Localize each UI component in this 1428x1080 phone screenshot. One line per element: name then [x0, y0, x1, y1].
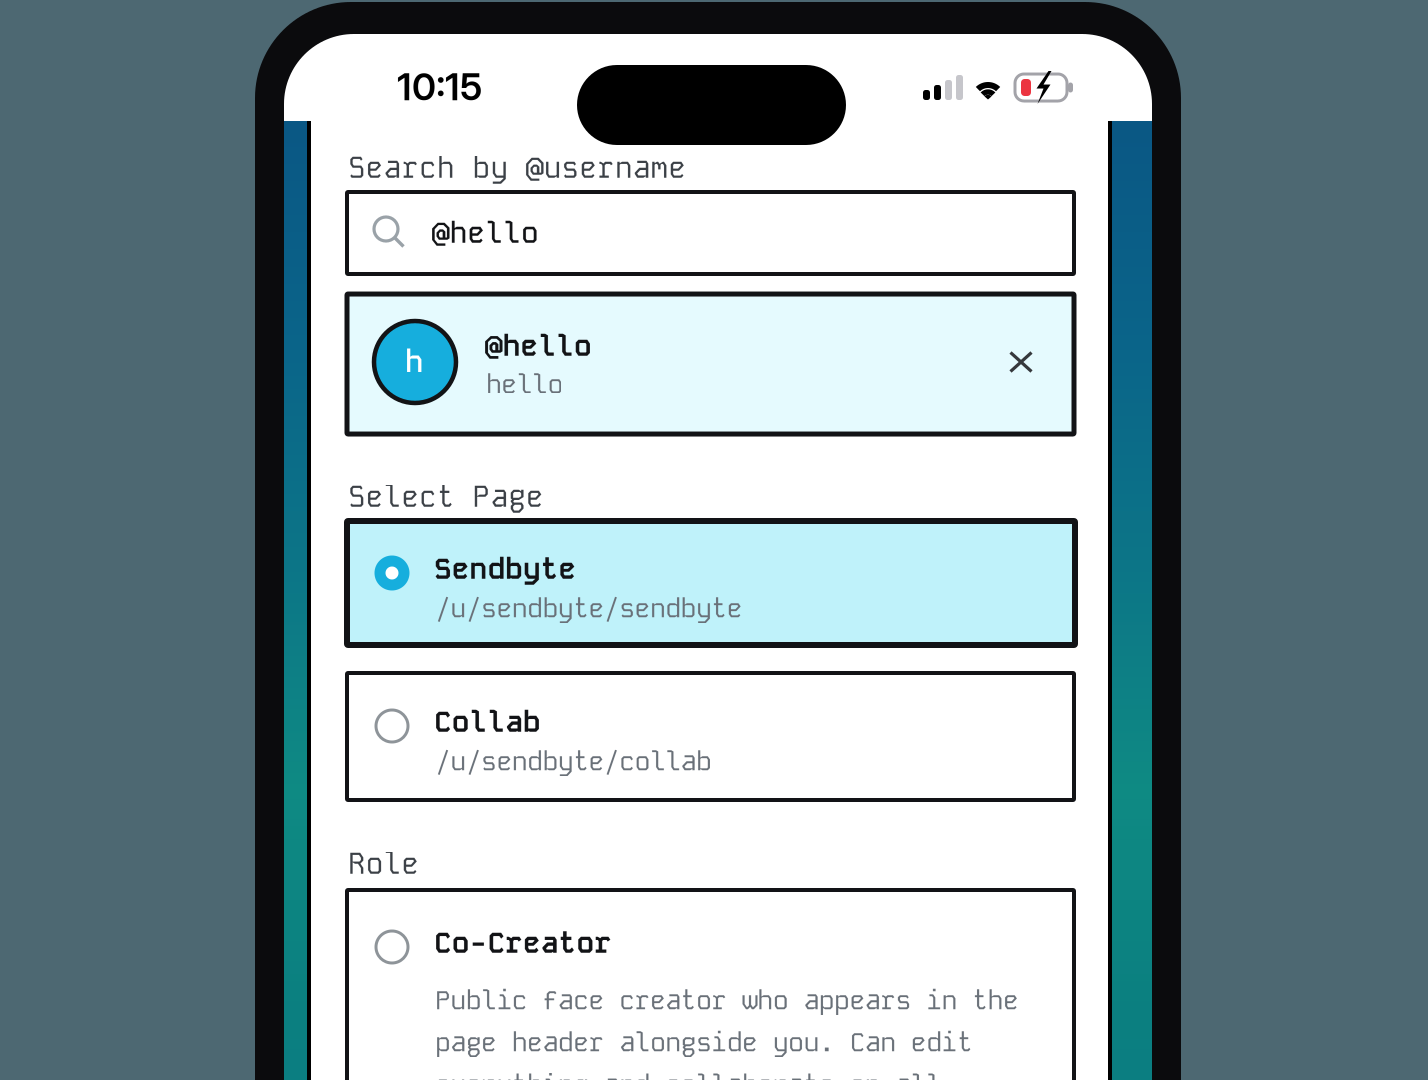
staticText: Sendbyte: [434, 550, 577, 587]
staticText: 10:15: [397, 64, 482, 109]
staticText: @hello: [485, 327, 592, 364]
staticText: @hello: [432, 214, 539, 251]
button[interactable]: h: [347, 294, 1074, 434]
staticText: Role: [348, 845, 419, 882]
button[interactable]: Collab: [347, 673, 1074, 800]
staticText: hello: [486, 367, 563, 401]
staticText: Public face creator who appears in the p…: [435, 983, 1019, 1080]
staticText: Select Page: [348, 478, 544, 515]
staticText: h: [405, 342, 423, 382]
staticText: /u/sendbyte/collab: [435, 744, 712, 778]
staticText: Search by @username: [348, 149, 686, 186]
button[interactable]: Sendbyte: [347, 521, 1075, 645]
button[interactable]: Co-Creator: [347, 890, 1074, 1080]
staticText: /u/sendbyte/sendbyte: [435, 591, 743, 625]
staticText: Co-Creator: [434, 924, 612, 961]
button[interactable]: @hello: [347, 192, 1074, 274]
staticText: Collab: [434, 703, 541, 740]
